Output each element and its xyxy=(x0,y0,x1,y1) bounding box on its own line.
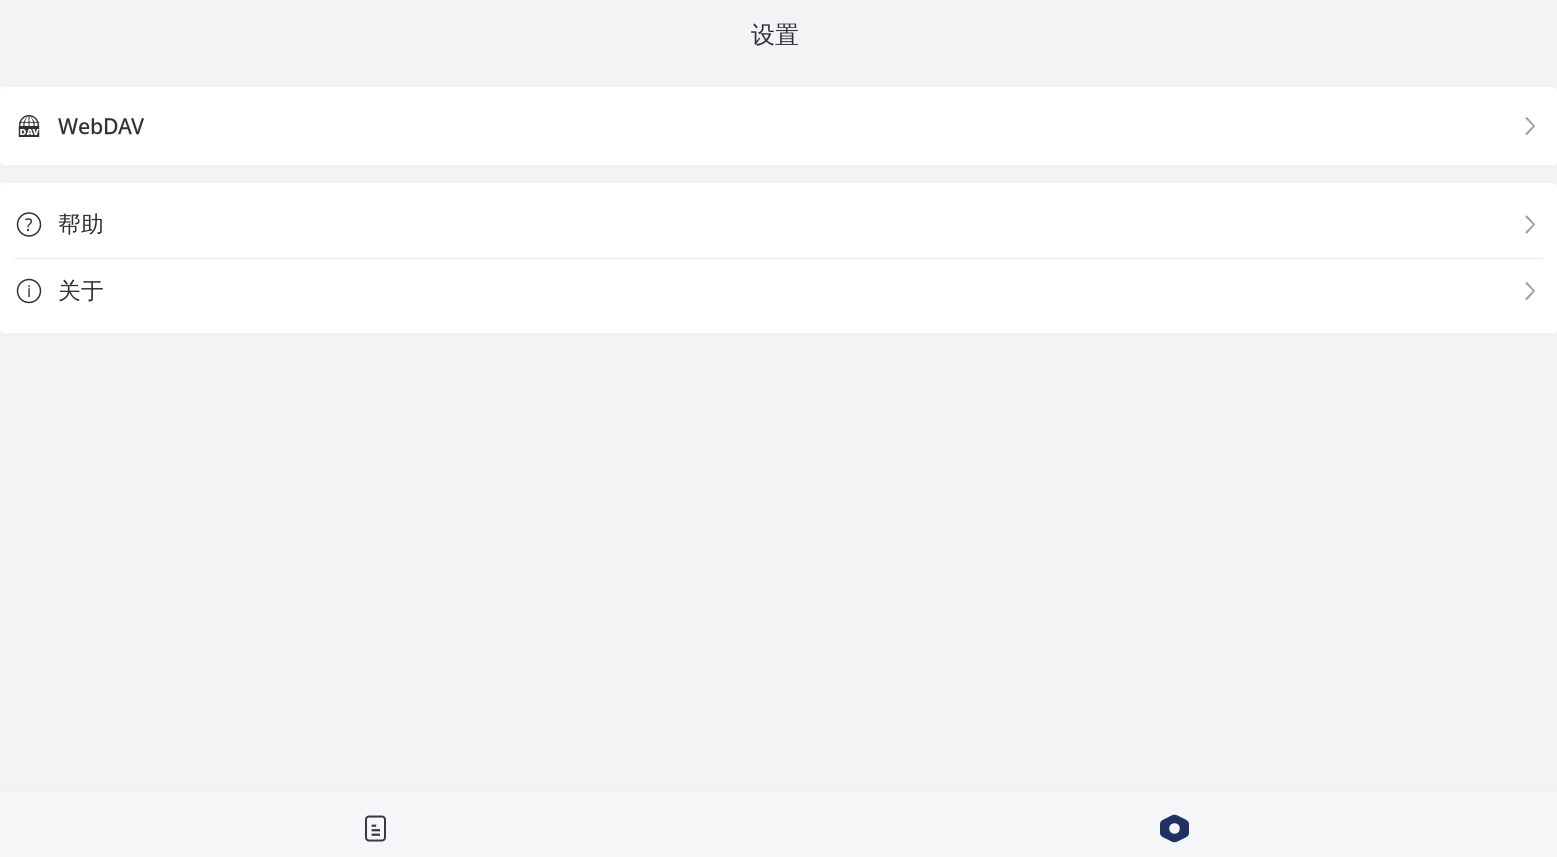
button[interactable]: Notes xyxy=(0,791,778,857)
button[interactable]: DAV xyxy=(0,87,1557,165)
staticText: 关于 xyxy=(58,277,104,305)
staticText: WebDAV xyxy=(58,112,144,140)
staticText: ? xyxy=(25,213,33,236)
staticText: 帮助 xyxy=(58,211,104,238)
button[interactable]: Settings xyxy=(778,791,1557,857)
button[interactable]: i xyxy=(0,259,1557,333)
button[interactable]: ? xyxy=(0,183,1557,258)
staticText: 设置 xyxy=(751,20,799,50)
staticText: i xyxy=(27,280,31,302)
staticText: DAV xyxy=(19,125,38,138)
